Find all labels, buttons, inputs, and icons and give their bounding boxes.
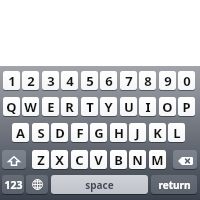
staticText: 4 (66, 72, 74, 90)
button[interactable]: space (51, 175, 148, 194)
staticText: G (94, 124, 104, 142)
button[interactable]: W (22, 97, 39, 116)
staticText: L (173, 124, 181, 142)
button[interactable]: M (149, 150, 166, 169)
button[interactable]: X (51, 150, 68, 169)
staticText: K (153, 124, 162, 142)
button[interactable]: 1 (3, 71, 20, 90)
button[interactable]: N (129, 150, 146, 169)
button[interactable]: 4 (61, 71, 78, 90)
staticText: X (55, 151, 64, 169)
staticText: 5 (86, 72, 94, 90)
staticText: N (132, 151, 143, 169)
staticText: R (65, 98, 74, 116)
staticText: 3 (47, 72, 55, 90)
staticText: Z (37, 151, 45, 169)
button[interactable]: Z (32, 150, 49, 169)
button[interactable]: R (61, 97, 78, 116)
staticText: J (135, 124, 140, 142)
button[interactable]: U (120, 97, 137, 116)
button[interactable]: G (90, 123, 107, 142)
button[interactable]: 6 (100, 71, 117, 90)
button[interactable]: J (129, 123, 146, 142)
button[interactable]: 0 (178, 71, 195, 90)
button[interactable]: O (159, 97, 176, 116)
button[interactable]: 2 (22, 71, 39, 90)
staticText: B (114, 151, 123, 169)
button[interactable]: Backspace (173, 150, 197, 169)
staticText: return (158, 178, 191, 192)
button[interactable]: V (90, 150, 107, 169)
staticText: I (145, 98, 151, 116)
button[interactable]: Y (100, 97, 117, 116)
button[interactable]: 7 (120, 71, 137, 90)
staticText: 1 (8, 72, 16, 90)
button[interactable]: Q (3, 97, 20, 116)
staticText: 0 (183, 72, 191, 90)
staticText: C (75, 151, 84, 169)
staticText: 2 (27, 72, 35, 90)
button[interactable]: C (71, 150, 88, 169)
button[interactable]: L (168, 123, 185, 142)
staticText: 9 (164, 72, 172, 90)
button[interactable]: B (110, 150, 127, 169)
staticText: H (114, 124, 124, 142)
button[interactable]: I (139, 97, 156, 116)
staticText: space (85, 178, 114, 192)
staticText: 6 (105, 72, 113, 90)
staticText: W (24, 98, 37, 116)
staticText: U (124, 98, 134, 116)
staticText: O (162, 98, 173, 116)
staticText: Y (104, 98, 113, 116)
button[interactable]: 8 (139, 71, 156, 90)
button[interactable]: 3 (42, 71, 59, 90)
button[interactable]: 5 (81, 71, 98, 90)
staticText: V (94, 151, 103, 169)
button[interactable]: T (81, 97, 98, 116)
button[interactable]: 9 (159, 71, 176, 90)
button[interactable]: F (71, 123, 88, 142)
button[interactable]: H (110, 123, 127, 142)
staticText: Q (6, 98, 17, 116)
staticText: 123 (4, 178, 23, 192)
button[interactable]: K (149, 123, 166, 142)
staticText: E (47, 98, 55, 116)
button[interactable]: 123 (2, 175, 24, 194)
button[interactable]: D (51, 123, 68, 142)
staticText: 7 (125, 72, 133, 90)
staticText: T (86, 98, 94, 116)
staticText: D (55, 124, 65, 142)
button[interactable]: A (12, 123, 29, 142)
staticText: P (182, 98, 191, 116)
button[interactable]: P (178, 97, 195, 116)
staticText: 8 (144, 72, 152, 90)
staticText: S (37, 124, 45, 142)
button[interactable]: S (32, 123, 49, 142)
staticText: F (76, 124, 84, 142)
button[interactable]: Change keyboard (26, 175, 48, 194)
button[interactable]: E (42, 97, 59, 116)
staticText: M (151, 151, 164, 169)
staticText: A (16, 124, 25, 142)
button[interactable]: Shift (2, 150, 26, 169)
button[interactable]: return (151, 175, 197, 194)
